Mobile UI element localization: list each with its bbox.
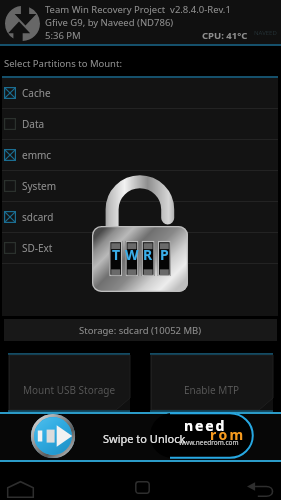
- button[interactable]: Recent apps: [118, 468, 166, 500]
- staticText: System: [22, 179, 56, 193]
- staticText: sdcard: [22, 210, 54, 224]
- button[interactable]: sdcard: [2, 202, 278, 233]
- button[interactable]: Cache: [2, 78, 278, 109]
- button[interactable]: Home: [0, 468, 48, 500]
- button[interactable]: Back: [237, 468, 281, 500]
- staticText: Data: [22, 117, 45, 131]
- staticText: Gfive G9, by Naveed (ND786): [45, 16, 174, 29]
- staticText: SD-Ext: [22, 241, 53, 255]
- button[interactable]: Mount USB Storage: [8, 353, 130, 412]
- staticText: P: [160, 245, 169, 264]
- button[interactable]: System: [2, 171, 278, 202]
- button[interactable]: need: [170, 412, 254, 459]
- staticText: Mount USB Storage: [23, 383, 116, 397]
- button[interactable]: Storage: sdcard (10052 MB): [4, 319, 277, 341]
- button[interactable]: Enable MTP: [150, 353, 273, 412]
- button[interactable]: [0, 412, 281, 462]
- staticText: R: [143, 245, 153, 264]
- staticText: NAVEED: [254, 29, 277, 37]
- button[interactable]: SD-Ext: [2, 233, 278, 264]
- staticText: need: [184, 416, 227, 435]
- staticText: Select Partitions to Mount:: [4, 57, 122, 70]
- staticText: T: [112, 245, 121, 264]
- staticText: 5:36 PM: [45, 29, 81, 42]
- button[interactable]: Data: [2, 109, 278, 140]
- staticText: www.needrom.com: [179, 438, 239, 447]
- staticText: emmc: [22, 148, 52, 162]
- staticText: W: [125, 245, 139, 264]
- staticText: Cache: [22, 86, 51, 100]
- button[interactable]: Swipe to Unlock: [31, 414, 75, 458]
- staticText: Swipe to Unlock: [103, 431, 186, 446]
- staticText: Enable MTP: [184, 383, 239, 397]
- staticText: CPU: 41°C: [202, 29, 248, 42]
- button[interactable]: emmc: [2, 140, 278, 171]
- staticText: rom: [210, 425, 246, 444]
- staticText: Team Win Recovery Project v2.8.4.0-Rev.1: [45, 3, 231, 16]
- staticText: Storage: sdcard (10052 MB): [79, 324, 202, 337]
